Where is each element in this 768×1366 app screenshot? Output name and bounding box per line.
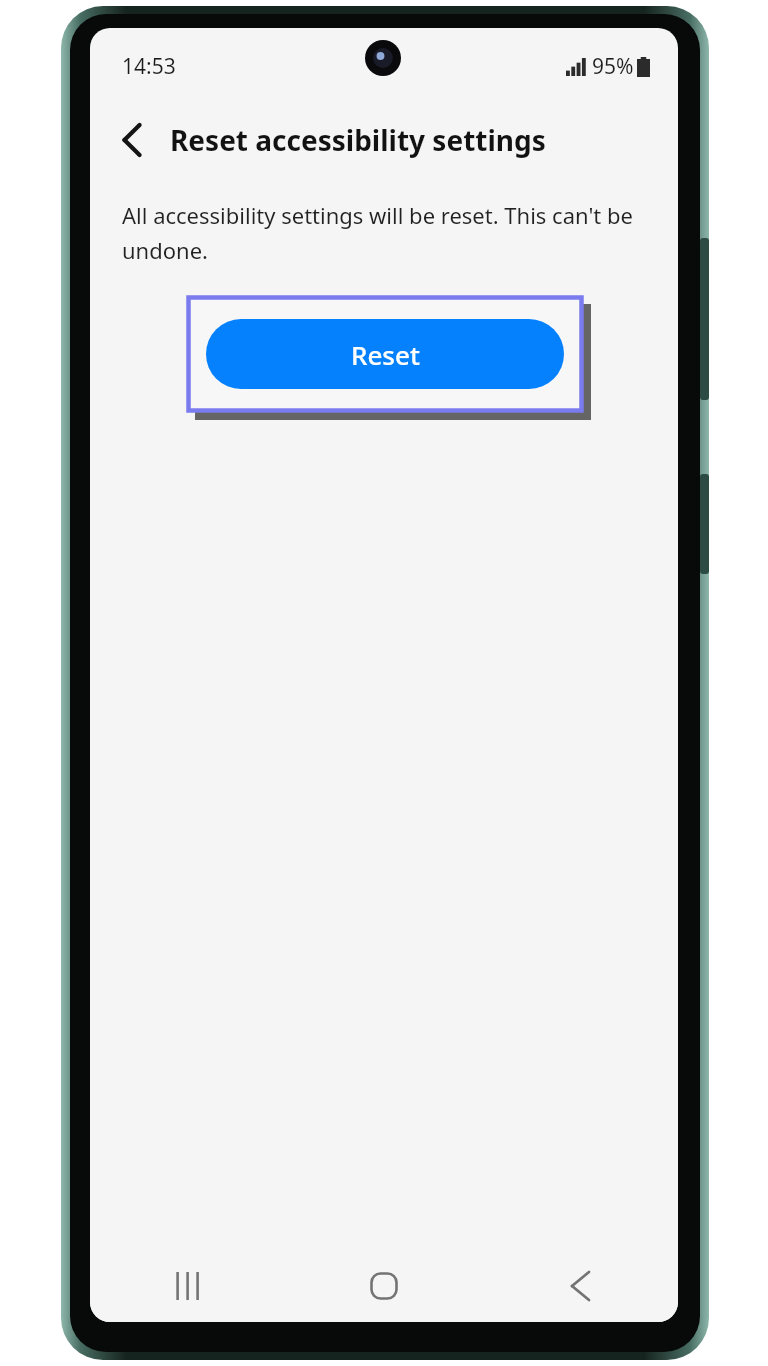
button[interactable]: Back bbox=[108, 116, 156, 164]
staticText: Reset accessibility settings bbox=[170, 121, 546, 159]
staticText: All accessibility settings will be reset… bbox=[122, 200, 644, 266]
button[interactable]: Reset bbox=[187, 296, 583, 412]
staticText: 14:53 bbox=[122, 52, 176, 81]
other: Volume buttons bbox=[700, 238, 709, 400]
button[interactable]: Recent apps bbox=[90, 1250, 286, 1322]
staticText: 95% bbox=[592, 52, 634, 81]
staticText: Reset bbox=[351, 337, 420, 372]
button[interactable]: Back bbox=[482, 1250, 678, 1322]
button[interactable]: Reset bbox=[206, 319, 564, 389]
other: Power button bbox=[700, 474, 709, 574]
button[interactable]: Home bbox=[286, 1250, 482, 1322]
